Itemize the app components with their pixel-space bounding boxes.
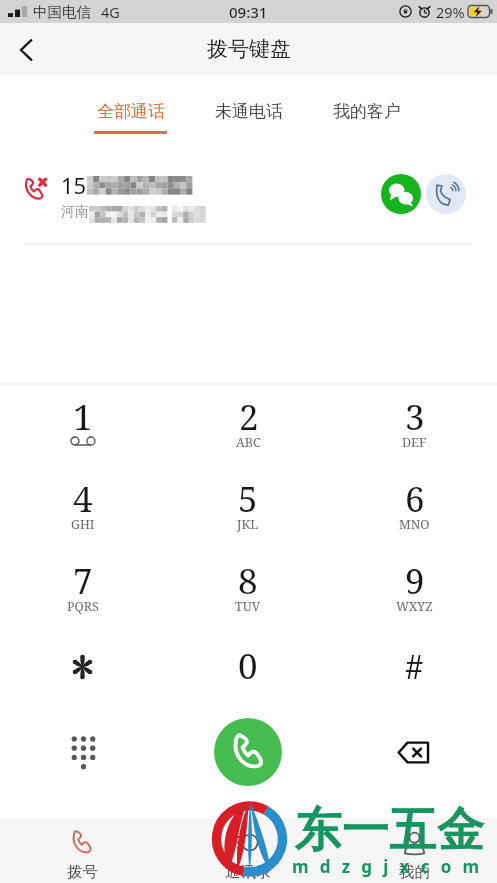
staticText: 6: [405, 475, 425, 523]
button[interactable]: Call: [426, 174, 466, 214]
button[interactable]: 我的客户: [330, 75, 403, 139]
staticText: 河南: [61, 203, 89, 221]
staticText: 29%: [436, 2, 465, 22]
staticText: 未通电话: [215, 101, 283, 122]
button[interactable]: WeChat: [381, 174, 421, 214]
staticText: 8: [238, 557, 258, 605]
staticText: 我的客户: [333, 101, 401, 122]
staticText: 拨号键盘: [207, 36, 291, 62]
staticText: MNO: [399, 516, 430, 533]
button[interactable]: Keypad: [0, 711, 165, 818]
button[interactable]: 6: [331, 466, 497, 548]
staticText: 4G: [101, 2, 120, 22]
staticText: 通讯录: [225, 862, 272, 882]
staticText: JKL: [237, 516, 259, 533]
button[interactable]: 15: [0, 139, 497, 245]
button[interactable]: 5: [165, 466, 331, 548]
button[interactable]: 通讯录: [165, 818, 331, 883]
staticText: m d z g j x c o m: [292, 855, 483, 878]
button[interactable]: #: [331, 630, 497, 712]
staticText: 7: [73, 557, 93, 605]
button[interactable]: Delete: [331, 711, 497, 818]
button[interactable]: Back: [7, 30, 45, 68]
staticText: 拨号: [67, 862, 98, 882]
button[interactable]: 7: [0, 548, 165, 630]
staticText: ABC: [236, 434, 261, 451]
staticText: 15: [61, 170, 87, 200]
staticText: 我的: [399, 862, 430, 882]
staticText: DEF: [402, 434, 427, 451]
button[interactable]: 9: [331, 548, 497, 630]
staticText: #: [405, 644, 424, 689]
button[interactable]: 2: [165, 384, 331, 466]
button[interactable]: 3: [331, 384, 497, 466]
staticText: GHI: [71, 516, 95, 533]
staticText: 中国电信: [33, 3, 91, 21]
staticText: 09:31: [229, 2, 268, 22]
button[interactable]: [0, 630, 165, 712]
staticText: TUV: [235, 598, 261, 615]
staticText: 9: [405, 557, 425, 605]
button[interactable]: 全部通话: [94, 75, 167, 139]
staticText: WXYZ: [396, 598, 433, 615]
staticText: 东一五金: [294, 801, 484, 860]
staticText: 2: [239, 393, 259, 441]
staticText: 1: [73, 393, 93, 441]
staticText: 全部通话: [97, 101, 165, 122]
staticText: 4: [73, 475, 93, 523]
button[interactable]: 4: [0, 466, 165, 548]
staticText: 0: [238, 642, 258, 690]
button[interactable]: 8: [165, 548, 331, 630]
staticText: 5: [238, 475, 258, 523]
button[interactable]: Call: [214, 718, 282, 786]
staticText: PQRS: [67, 598, 99, 615]
button[interactable]: 未通电话: [212, 75, 285, 139]
button[interactable]: 0: [165, 630, 331, 712]
button[interactable]: 1: [0, 384, 165, 466]
button[interactable]: 拨号: [0, 818, 165, 883]
button[interactable]: 我的: [331, 818, 497, 883]
staticText: 3: [405, 393, 425, 441]
